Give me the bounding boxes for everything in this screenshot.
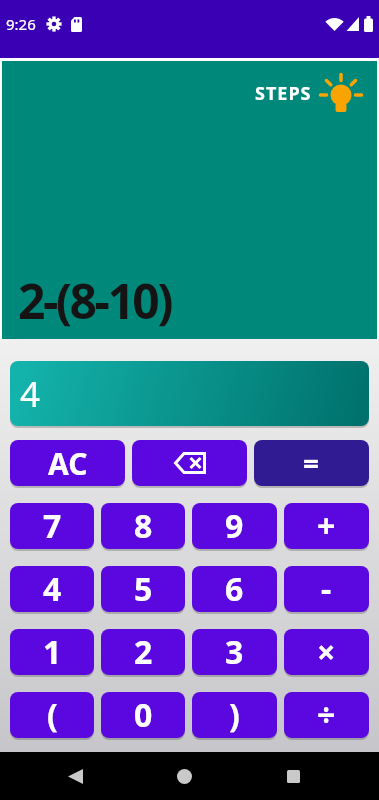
button[interactable]: 8	[101, 503, 185, 549]
staticText: )	[229, 693, 240, 737]
button[interactable]	[132, 440, 247, 486]
button[interactable]: AC	[10, 440, 125, 486]
button[interactable]: 3	[192, 629, 277, 675]
staticText: STEPS	[255, 81, 312, 106]
staticText: 8	[134, 504, 153, 548]
button[interactable]: 4	[10, 566, 94, 612]
button[interactable]: 1	[10, 629, 94, 675]
staticText: AC	[48, 443, 88, 484]
button[interactable]: ÷	[284, 692, 369, 738]
button[interactable]	[20, 752, 130, 800]
button[interactable]	[239, 752, 348, 800]
staticText: (	[47, 693, 58, 737]
button[interactable]: STEPS	[255, 71, 363, 115]
button[interactable]: 5	[101, 566, 185, 612]
staticText: 5	[134, 567, 153, 611]
button[interactable]: (	[10, 692, 94, 738]
staticText: 3	[225, 630, 244, 674]
button[interactable]: =	[254, 440, 369, 486]
button[interactable]: 2	[101, 629, 185, 675]
staticText: -	[321, 567, 332, 611]
button[interactable]	[130, 752, 239, 800]
staticText: 9	[225, 504, 244, 548]
button[interactable]: ×	[284, 629, 369, 675]
staticText: 4	[43, 567, 62, 611]
staticText: =	[303, 444, 320, 482]
button[interactable]: -	[284, 566, 369, 612]
button[interactable]: 9	[192, 503, 277, 549]
button[interactable]: )	[192, 692, 277, 738]
button[interactable]: 0	[101, 692, 185, 738]
staticText: 6	[225, 567, 244, 611]
staticText: 4	[20, 370, 41, 418]
staticText: 0	[134, 693, 153, 737]
staticText: 1	[43, 630, 62, 674]
staticText: 2-(8-10)	[18, 268, 172, 333]
button[interactable]: +	[284, 503, 369, 549]
staticText: 2	[134, 630, 153, 674]
staticText: +	[317, 504, 336, 548]
staticText: ÷	[317, 693, 336, 737]
staticText: 7	[43, 504, 62, 548]
staticText: 9:26	[6, 14, 36, 34]
staticText: ×	[317, 630, 336, 674]
button[interactable]: 7	[10, 503, 94, 549]
button[interactable]: 6	[192, 566, 277, 612]
button[interactable]: 4	[10, 361, 369, 426]
